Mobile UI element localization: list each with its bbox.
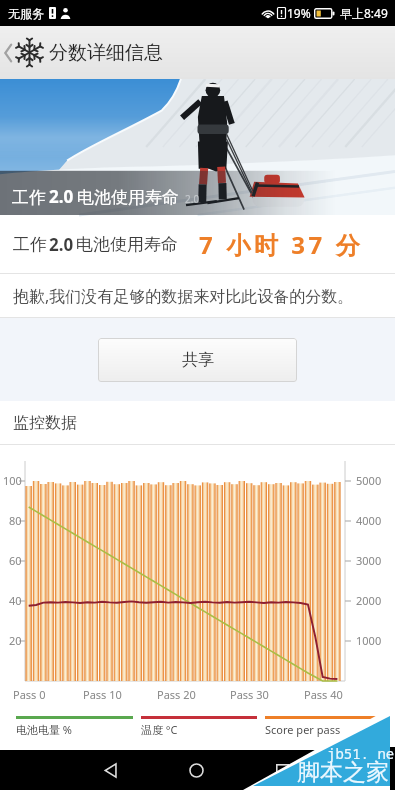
- staticText: 早上8:49: [340, 5, 388, 21]
- staticText: 19%: [287, 5, 311, 21]
- staticText: 工作: [12, 187, 46, 208]
- staticText: 抱歉,我们没有足够的数据来对比此设备的分数。: [13, 285, 354, 307]
- staticText: Pass 0: [13, 687, 46, 702]
- button[interactable]: Home: [174, 750, 218, 790]
- staticText: 1000: [356, 633, 382, 648]
- staticText: 监控数据: [13, 413, 77, 433]
- staticText: 40: [9, 593, 22, 608]
- staticText: 温度 °C: [141, 722, 178, 737]
- staticText: 工作: [13, 234, 47, 255]
- staticText: 100: [3, 473, 22, 488]
- staticText: Pass 20: [157, 687, 196, 702]
- staticText: Score per pass: [265, 722, 341, 737]
- staticText: Pass 30: [230, 687, 269, 702]
- staticText: 电池使用寿命: [76, 234, 178, 255]
- staticText: 80: [9, 513, 22, 528]
- staticText: 60: [9, 553, 22, 568]
- staticText: 无服务: [8, 6, 44, 21]
- staticText: 4000: [356, 513, 382, 528]
- staticText: 3000: [356, 553, 382, 568]
- staticText: 7 小时 37 分: [199, 228, 364, 261]
- staticText: 共享: [182, 350, 214, 370]
- button[interactable]: Back: [88, 750, 132, 790]
- staticText: 电池使用寿命: [77, 187, 179, 208]
- staticText: Pass 40: [304, 687, 343, 702]
- staticText: 脚本之家: [297, 758, 389, 787]
- button[interactable]: Back: [0, 31, 16, 75]
- staticText: 2.0: [49, 185, 74, 208]
- staticText: 2.0: [49, 233, 74, 256]
- button[interactable]: 共享: [98, 338, 297, 382]
- staticText: 2.0: [185, 192, 200, 206]
- staticText: Pass 10: [83, 687, 122, 702]
- staticText: 20: [9, 633, 22, 648]
- staticText: 5000: [356, 473, 382, 488]
- button[interactable]: Recents: [260, 750, 304, 790]
- staticText: jb51. net: [327, 744, 395, 763]
- staticText: 分数详细信息: [49, 41, 163, 65]
- staticText: 2000: [356, 593, 382, 608]
- staticText: 电池电量 %: [16, 722, 73, 737]
